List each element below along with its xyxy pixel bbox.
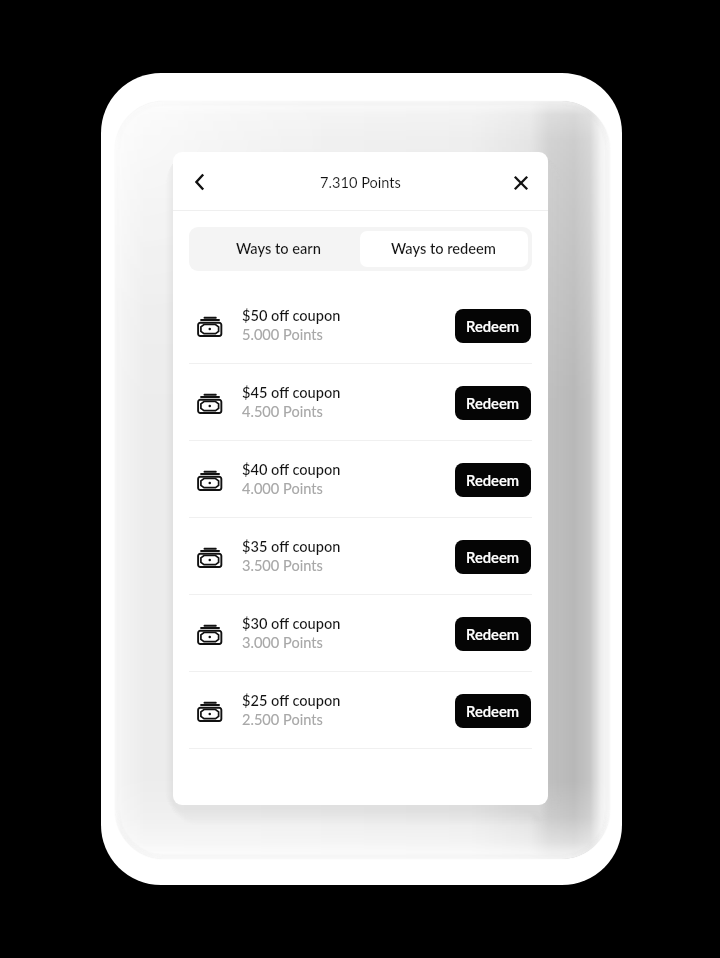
button[interactable]: $25 off coupon (173, 672, 548, 749)
staticText: $50 off coupon (242, 307, 341, 325)
button[interactable]: Ways to earn (189, 227, 360, 271)
staticText: 4.000 Points (242, 480, 323, 498)
staticText: Redeem (466, 317, 520, 335)
button[interactable]: $45 off coupon (173, 364, 548, 441)
button[interactable]: $50 off coupon (173, 287, 548, 364)
button[interactable]: Ways to redeem (360, 231, 528, 267)
button[interactable]: Redeem (455, 617, 531, 651)
staticText: 5.000 Points (242, 326, 323, 344)
button[interactable]: Back (178, 160, 222, 204)
staticText: $25 off coupon (242, 692, 341, 710)
staticText: 3.000 Points (242, 634, 323, 652)
button[interactable]: $40 off coupon (173, 441, 548, 518)
staticText: Redeem (466, 548, 520, 566)
staticText: Redeem (466, 702, 520, 720)
staticText: $30 off coupon (242, 615, 341, 633)
staticText: 7.310 Points (173, 174, 548, 192)
staticText: $45 off coupon (242, 384, 341, 402)
staticText: Redeem (466, 394, 520, 412)
staticText: Ways to earn (236, 240, 321, 258)
button[interactable]: Redeem (455, 386, 531, 420)
button[interactable]: $35 off coupon (173, 518, 548, 595)
staticText: $35 off coupon (242, 538, 341, 556)
button[interactable]: Redeem (455, 309, 531, 343)
staticText: Ways to redeem (391, 240, 496, 258)
staticText: 3.500 Points (242, 557, 323, 575)
staticText: Redeem (466, 625, 520, 643)
button[interactable]: $30 off coupon (173, 595, 548, 672)
staticText: Redeem (466, 471, 520, 489)
button[interactable]: Redeem (455, 463, 531, 497)
staticText: $40 off coupon (242, 461, 341, 479)
staticText: 2.500 Points (242, 711, 323, 729)
button[interactable]: Redeem (455, 540, 531, 574)
button[interactable]: Close (499, 161, 543, 205)
staticText: 4.500 Points (242, 403, 323, 421)
button[interactable]: Redeem (455, 694, 531, 728)
